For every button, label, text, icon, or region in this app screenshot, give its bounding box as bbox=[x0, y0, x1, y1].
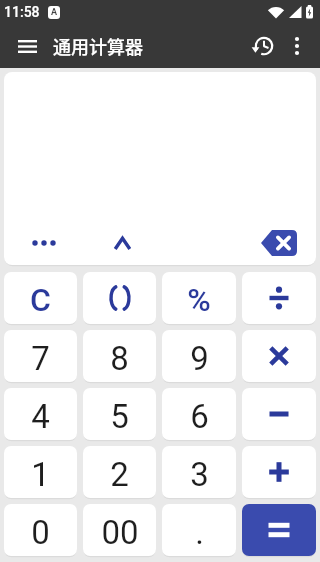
button[interactable]: 7 bbox=[4, 330, 77, 382]
staticText: 0 bbox=[31, 513, 50, 552]
staticText: 通用计算器 bbox=[53, 33, 143, 59]
button[interactable]: 2 bbox=[83, 446, 156, 498]
button[interactable]: 00 bbox=[83, 504, 156, 556]
button[interactable]: 9 bbox=[162, 330, 236, 382]
button[interactable]: 1 bbox=[4, 446, 77, 498]
staticText: 4 bbox=[31, 397, 50, 436]
button[interactable]: % bbox=[162, 272, 236, 324]
button[interactable]: 8 bbox=[83, 330, 156, 382]
button[interactable]: 5 bbox=[83, 388, 156, 440]
staticText: C bbox=[30, 281, 51, 319]
staticText: 6 bbox=[190, 397, 209, 436]
button[interactable] bbox=[0, 24, 44, 68]
button[interactable] bbox=[242, 272, 316, 324]
staticText: 5 bbox=[110, 397, 129, 436]
button[interactable] bbox=[242, 504, 316, 556]
button[interactable]: 6 bbox=[162, 388, 236, 440]
button[interactable] bbox=[242, 446, 316, 498]
staticText: 7 bbox=[31, 339, 50, 378]
button[interactable] bbox=[240, 24, 280, 68]
button[interactable]: 0 bbox=[4, 504, 77, 556]
button[interactable]: . bbox=[162, 504, 236, 556]
button[interactable] bbox=[242, 388, 316, 440]
staticText: 9 bbox=[190, 339, 209, 378]
staticText: 1 bbox=[31, 455, 50, 494]
button[interactable] bbox=[280, 24, 320, 68]
staticText: 8 bbox=[110, 339, 129, 378]
staticText: 11:58 bbox=[4, 4, 40, 20]
staticText: A bbox=[51, 7, 58, 18]
staticText: 2 bbox=[110, 455, 129, 494]
staticText: 3 bbox=[190, 455, 209, 494]
staticText: . bbox=[195, 513, 204, 552]
button[interactable] bbox=[83, 221, 156, 265]
button[interactable]: 3 bbox=[162, 446, 236, 498]
button[interactable] bbox=[83, 272, 156, 324]
button[interactable]: C bbox=[4, 272, 77, 324]
staticText: % bbox=[187, 281, 211, 319]
button[interactable] bbox=[242, 330, 316, 382]
button[interactable]: 4 bbox=[4, 388, 77, 440]
button[interactable] bbox=[242, 221, 316, 265]
button[interactable] bbox=[4, 221, 77, 265]
staticText: 00 bbox=[101, 513, 139, 552]
